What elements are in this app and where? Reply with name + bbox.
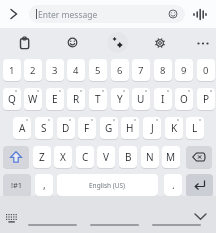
- staticText: 7: [138, 64, 144, 77]
- staticText: 8: [160, 64, 166, 77]
- button[interactable]: [107, 32, 128, 53]
- button[interactable]: G: [100, 117, 118, 139]
- button[interactable]: H: [121, 117, 139, 139]
- staticText: F: [84, 121, 90, 135]
- button[interactable]: 0: [197, 59, 215, 81]
- staticText: T: [95, 92, 101, 106]
- button[interactable]: U: [132, 88, 150, 110]
- button[interactable]: M: [162, 146, 180, 168]
- staticText: 1: [9, 64, 15, 77]
- button[interactable]: E: [46, 88, 64, 110]
- button[interactable]: 3: [46, 59, 64, 81]
- staticText: I: [161, 92, 165, 106]
- staticText: K: [171, 121, 178, 135]
- staticText: S: [41, 121, 47, 135]
- button[interactable]: T: [89, 88, 107, 110]
- button[interactable]: [186, 146, 212, 168]
- button[interactable]: J: [143, 117, 161, 139]
- staticText: 3: [52, 64, 58, 77]
- button[interactable]: Y: [111, 88, 129, 110]
- staticText: Z: [39, 150, 45, 164]
- button[interactable]: 5: [89, 59, 107, 81]
- staticText: J: [151, 121, 154, 135]
- staticText: 6: [117, 64, 123, 77]
- button[interactable]: Enter message: [29, 5, 185, 23]
- button[interactable]: [67, 37, 78, 48]
- button[interactable]: Q: [3, 88, 21, 110]
- button[interactable]: A: [13, 117, 31, 139]
- button[interactable]: English (US): [57, 174, 158, 196]
- staticText: N: [146, 150, 154, 164]
- staticText: English (US): [89, 181, 126, 190]
- button[interactable]: O: [175, 88, 193, 110]
- button[interactable]: ,: [35, 174, 53, 196]
- staticText: .: [172, 178, 175, 192]
- button[interactable]: V: [97, 146, 115, 168]
- button[interactable]: [9, 8, 19, 20]
- button[interactable]: N: [141, 146, 159, 168]
- staticText: ,: [43, 178, 46, 192]
- staticText: 2: [30, 64, 36, 77]
- button[interactable]: [197, 42, 209, 45]
- staticText: R: [73, 92, 80, 106]
- button[interactable]: .: [164, 174, 182, 196]
- button[interactable]: C: [76, 146, 94, 168]
- button[interactable]: !#1: [3, 174, 31, 196]
- button[interactable]: D: [57, 117, 75, 139]
- button[interactable]: I: [154, 88, 172, 110]
- staticText: B: [125, 150, 132, 164]
- button[interactable]: [3, 146, 29, 168]
- staticText: V: [103, 150, 109, 164]
- button[interactable]: 9: [175, 59, 193, 81]
- staticText: C: [82, 150, 89, 164]
- button[interactable]: [168, 9, 178, 19]
- button[interactable]: 7: [132, 59, 150, 81]
- staticText: 9: [181, 64, 187, 77]
- staticText: 0: [203, 64, 209, 77]
- button[interactable]: [193, 9, 207, 20]
- button[interactable]: S: [35, 117, 53, 139]
- staticText: A: [19, 121, 26, 135]
- staticText: O: [180, 92, 188, 106]
- button[interactable]: [28, 224, 77, 226]
- button[interactable]: R: [67, 88, 85, 110]
- button[interactable]: [186, 174, 213, 196]
- staticText: 4: [73, 64, 79, 77]
- button[interactable]: 4: [67, 59, 85, 81]
- button[interactable]: X: [54, 146, 72, 168]
- button[interactable]: K: [165, 117, 183, 139]
- button[interactable]: F: [78, 117, 96, 139]
- staticText: H: [126, 121, 134, 135]
- staticText: Y: [117, 92, 123, 106]
- button[interactable]: [194, 213, 207, 221]
- button[interactable]: [19, 37, 30, 49]
- staticText: 5: [95, 64, 101, 77]
- button[interactable]: 6: [111, 59, 129, 81]
- staticText: U: [137, 92, 145, 106]
- staticText: Enter message: [38, 9, 98, 21]
- staticText: !#1: [11, 180, 23, 190]
- button[interactable]: P: [197, 88, 215, 110]
- button[interactable]: 8: [154, 59, 172, 81]
- button[interactable]: W: [24, 88, 42, 110]
- staticText: X: [60, 150, 66, 164]
- staticText: D: [62, 121, 70, 135]
- button[interactable]: 2: [24, 59, 42, 81]
- staticText: P: [203, 92, 210, 106]
- button[interactable]: [154, 37, 166, 49]
- staticText: G: [105, 121, 113, 135]
- button[interactable]: [90, 224, 139, 226]
- staticText: M: [166, 150, 176, 164]
- staticText: E: [52, 92, 58, 106]
- staticText: Q: [8, 92, 16, 106]
- staticText: W: [28, 92, 38, 106]
- button[interactable]: B: [119, 146, 137, 168]
- button[interactable]: [152, 224, 201, 226]
- staticText: L: [192, 121, 198, 135]
- button[interactable]: [5, 213, 18, 224]
- button[interactable]: 1: [3, 59, 21, 81]
- button[interactable]: L: [186, 117, 204, 139]
- button[interactable]: Z: [33, 146, 51, 168]
